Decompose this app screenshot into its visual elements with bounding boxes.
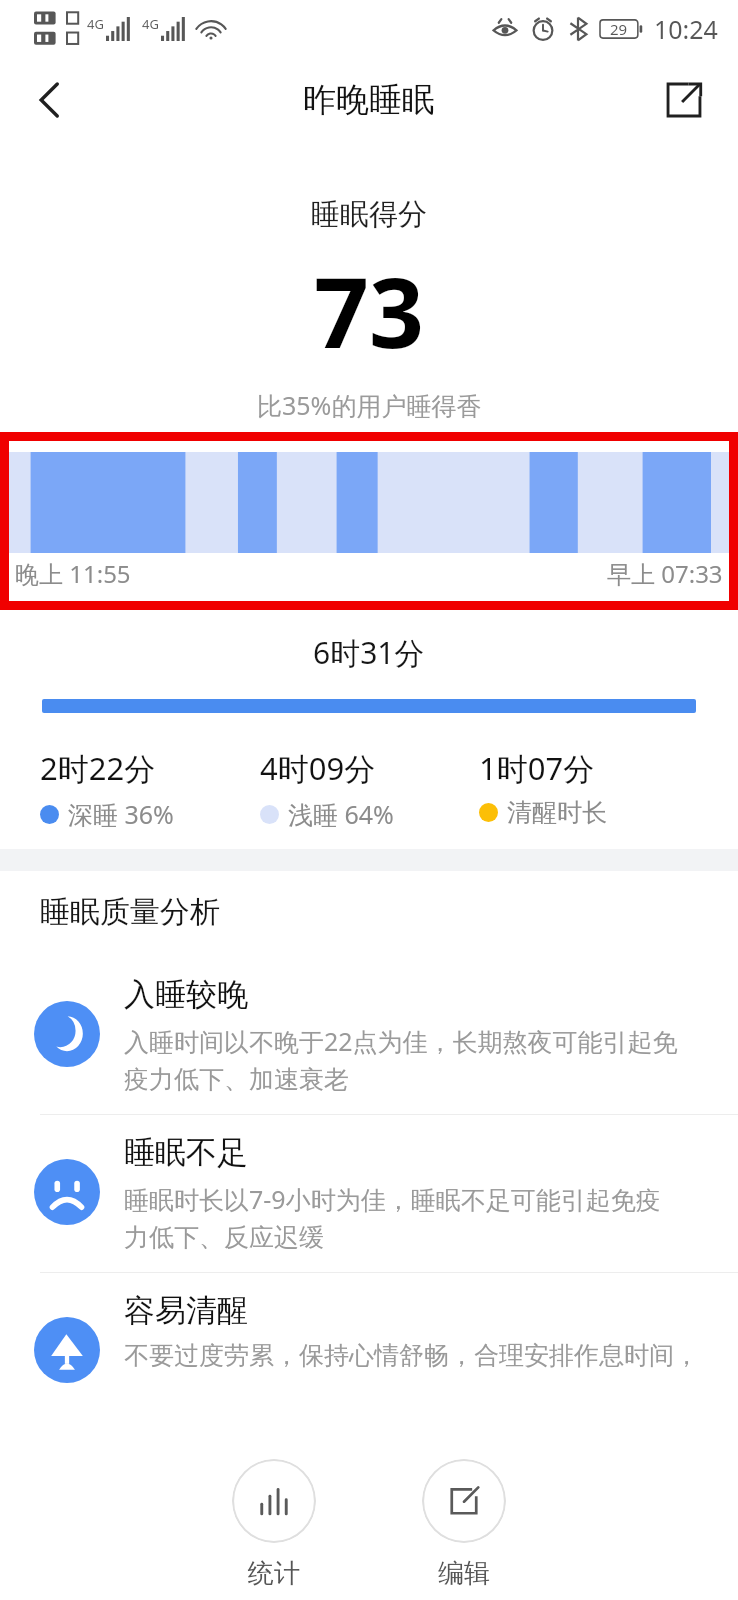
staticText: 昨晚睡眠 [303,79,435,121]
staticText: 2时22分 [40,747,156,789]
staticText: 编辑 [438,1557,490,1590]
button[interactable]: 入睡较晚 [34,975,716,1096]
button[interactable]: 晚上 11:55 [0,432,738,610]
staticText: 4时09分 [260,747,376,789]
button[interactable]: 容易清醒 [34,1291,716,1383]
staticText: 入睡较晚 [124,975,248,1014]
staticText: 29 [610,19,628,39]
staticText: 睡眠不足 [124,1133,248,1172]
staticText: 容易清醒 [124,1291,248,1330]
staticText: 10:24 [654,12,718,46]
button[interactable]: Back [18,68,82,132]
staticText: 入睡时间以不晚于22点为佳，长期熬夜可能引起免 疫力低下、加速衰老 [124,1024,678,1096]
staticText: 1时07分 [479,747,595,789]
button[interactable]: Share [652,68,716,132]
button[interactable]: 1时07分 [479,747,698,828]
staticText: 睡眠质量分析 [40,893,220,931]
staticText: 73 [314,245,424,376]
button[interactable]: 统计 [222,1459,326,1590]
staticText: 睡眠得分 [311,196,427,233]
staticText: 晚上 11:55 [15,557,131,590]
button[interactable]: 编辑 [412,1459,516,1590]
button[interactable]: 4时09分 [260,747,479,831]
staticText: 6时31分 [313,632,425,673]
staticText: 深睡 36% [68,797,174,831]
staticText: 清醒时长 [507,797,607,828]
staticText: 统计 [248,1557,300,1590]
staticText: 早上 07:33 [607,557,723,590]
staticText: 比35%的用户睡得香 [257,388,482,422]
staticText: 4G [87,15,104,33]
button[interactable]: 睡眠不足 [34,1133,716,1254]
staticText: 浅睡 64% [288,797,394,831]
staticText: 睡眠时长以7‑9小时为佳，睡眠不足可能引起免疫 力低下、反应迟缓 [124,1182,661,1254]
button[interactable]: 2时22分 [40,747,260,831]
staticText: 4G [142,15,159,33]
staticText: 不要过度劳累，保持心情舒畅，合理安排作息时间， [124,1340,699,1371]
